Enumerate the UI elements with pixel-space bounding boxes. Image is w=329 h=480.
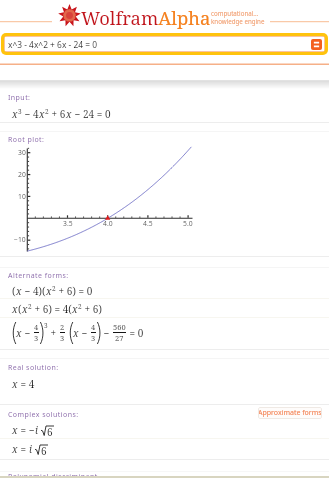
staticText: + 6) bbox=[82, 302, 102, 316]
button[interactable]: Keyboard bbox=[311, 39, 322, 50]
staticText: WolframAlpha bbox=[81, 5, 211, 30]
staticText: 2 bbox=[45, 107, 49, 116]
staticText: Approximate forms bbox=[258, 408, 322, 418]
button[interactable]: Approximate forms bbox=[258, 407, 322, 419]
staticText: Complex solutions: bbox=[8, 410, 79, 420]
staticText: 4 bbox=[91, 322, 96, 332]
staticText: x bbox=[16, 284, 22, 298]
staticText: x bbox=[12, 442, 18, 456]
staticText: x bbox=[12, 107, 18, 121]
staticText: 4 bbox=[34, 322, 39, 332]
staticText: i bbox=[29, 442, 33, 456]
staticText: − 4)( bbox=[22, 284, 46, 298]
staticText: x bbox=[12, 377, 18, 391]
staticText: −10 bbox=[14, 235, 26, 244]
staticText: x bbox=[73, 326, 79, 340]
staticText: 6 bbox=[41, 444, 47, 455]
staticText: − bbox=[79, 326, 90, 340]
staticText: = 4 bbox=[18, 377, 35, 391]
staticText: x bbox=[22, 302, 28, 316]
staticText: 5.0 bbox=[183, 219, 193, 228]
staticText: x bbox=[46, 284, 52, 298]
staticText: 2 bbox=[52, 284, 56, 293]
staticText: 27 bbox=[115, 333, 124, 343]
staticText: + bbox=[48, 326, 59, 340]
staticText: 2 bbox=[78, 302, 82, 311]
staticText: 560 bbox=[113, 322, 126, 332]
staticText: − 4 bbox=[22, 107, 39, 121]
staticText: 3 bbox=[60, 333, 65, 343]
staticText: x bbox=[66, 107, 72, 121]
staticText: 4.0 bbox=[103, 219, 113, 228]
staticText: Input: bbox=[8, 93, 31, 103]
staticText: ( bbox=[18, 302, 22, 316]
staticText: 3 bbox=[91, 333, 96, 343]
staticText: knowledge engine bbox=[211, 17, 265, 25]
staticText: i bbox=[35, 423, 39, 437]
staticText: 30 bbox=[18, 148, 26, 157]
staticText: x bbox=[39, 107, 45, 121]
staticText: 3.5 bbox=[63, 219, 73, 228]
staticText: x bbox=[72, 302, 78, 316]
staticText: 2 bbox=[28, 302, 32, 311]
staticText: Root plot: bbox=[8, 135, 45, 145]
staticText: Alternate forms: bbox=[8, 271, 69, 281]
staticText: + 6) = 0 bbox=[56, 284, 93, 298]
button[interactable]: x^3 - 4x^2 + 6x - 24 = 0 bbox=[5, 37, 324, 51]
staticText: = 0 bbox=[127, 326, 144, 340]
staticText: − 24 = 0 bbox=[72, 107, 111, 121]
staticText: + 6) = 4( bbox=[32, 302, 72, 316]
staticText: Polynomial discriminant bbox=[8, 472, 98, 480]
staticText: x^3 - 4x^2 + 6x - 24 = 0 bbox=[8, 39, 97, 50]
staticText: 10 bbox=[18, 192, 26, 201]
staticText: ( bbox=[12, 284, 16, 298]
staticText: 2 bbox=[60, 322, 65, 332]
staticText: computational... bbox=[211, 9, 259, 17]
staticText: = − bbox=[18, 423, 35, 437]
staticText: x bbox=[12, 423, 18, 437]
staticText: x bbox=[16, 326, 22, 340]
staticText: 6 bbox=[47, 425, 53, 436]
staticText: 4.5 bbox=[143, 219, 153, 228]
staticText: 20 bbox=[18, 170, 26, 179]
staticText: + 6 bbox=[49, 107, 66, 121]
staticText: 3 bbox=[34, 333, 39, 343]
staticText: x bbox=[12, 302, 18, 316]
staticText: − bbox=[101, 326, 112, 340]
staticText: Real solution: bbox=[8, 363, 59, 373]
staticText: − bbox=[22, 326, 33, 340]
staticText: 3 bbox=[44, 321, 48, 330]
staticText: 3 bbox=[18, 107, 22, 116]
staticText: = bbox=[18, 442, 29, 456]
